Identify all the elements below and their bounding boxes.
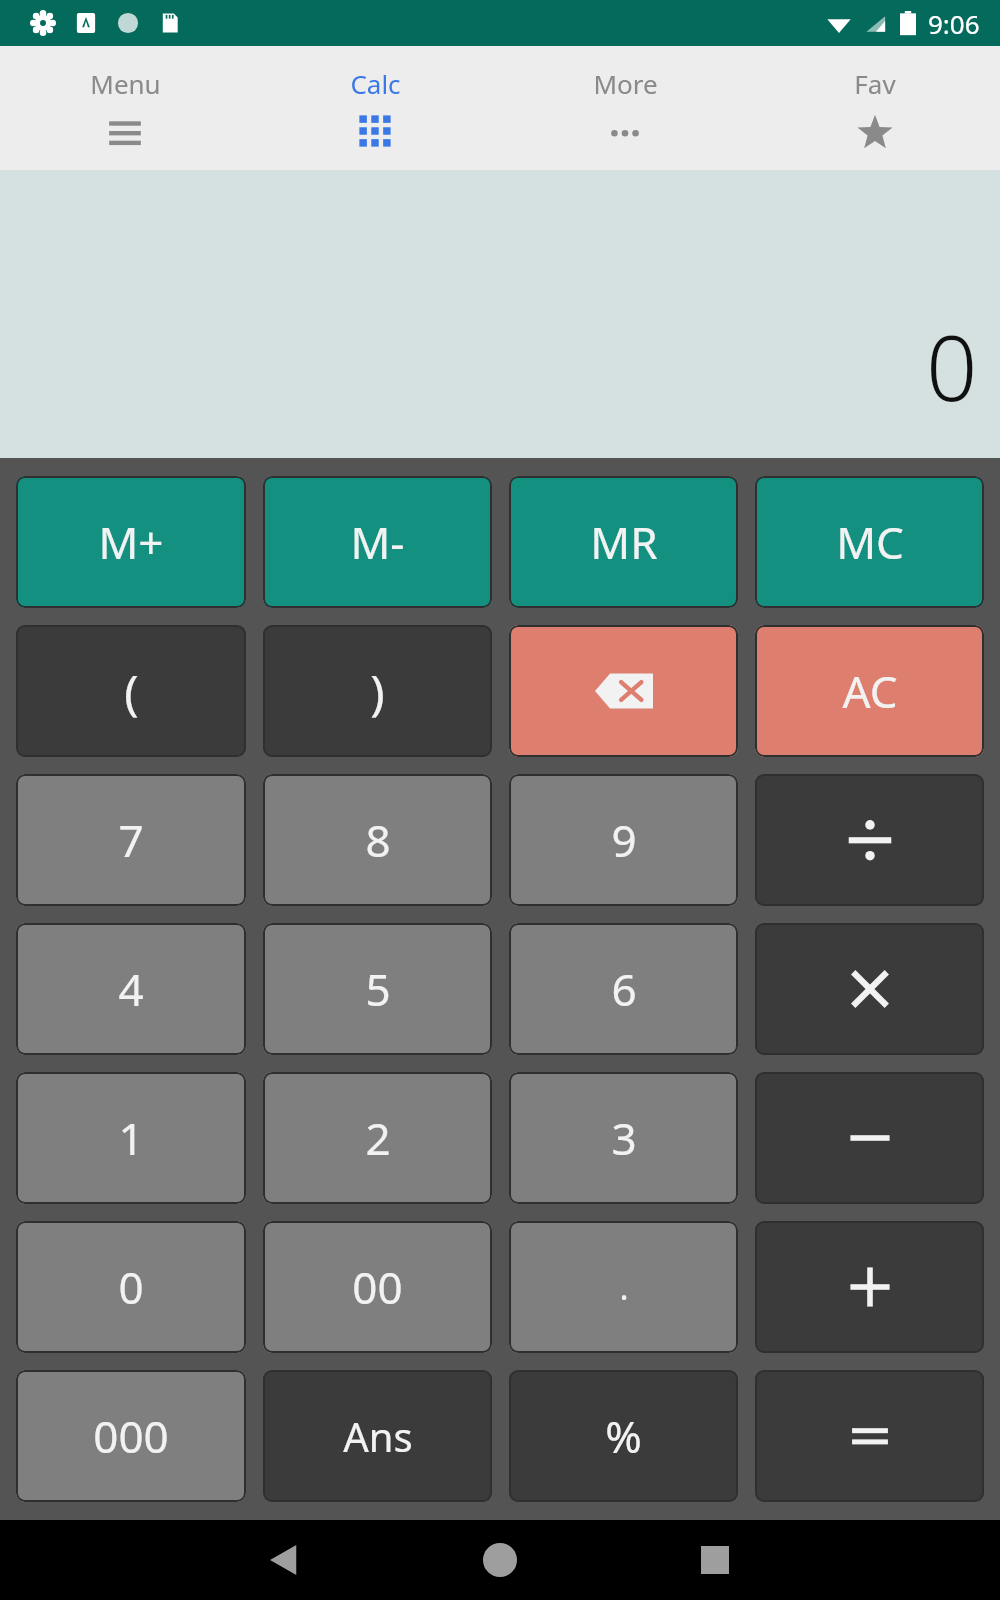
button[interactable]: M-: [263, 476, 492, 608]
button[interactable]: Minus: [755, 1072, 984, 1204]
staticText: 6: [611, 959, 637, 1019]
button[interactable]: 000: [16, 1370, 246, 1502]
staticText: ): [370, 659, 385, 724]
button[interactable]: Menu: [0, 46, 250, 170]
staticText: More: [593, 66, 658, 101]
staticText: Calc: [350, 66, 401, 101]
button[interactable]: Divide: [755, 774, 984, 906]
staticText: Ans: [343, 1409, 413, 1463]
staticText: 9:06: [928, 6, 980, 41]
button[interactable]: Ans: [263, 1370, 492, 1502]
button[interactable]: MR: [509, 476, 738, 608]
button[interactable]: M+: [16, 476, 246, 608]
button[interactable]: Multiply: [755, 923, 984, 1055]
button[interactable]: ): [263, 625, 492, 757]
staticText: 5: [365, 959, 391, 1019]
button[interactable]: 8: [263, 774, 492, 906]
button[interactable]: 00: [263, 1221, 492, 1353]
button[interactable]: 6: [509, 923, 738, 1055]
staticText: 7: [118, 810, 144, 870]
button[interactable]: MC: [755, 476, 984, 608]
staticText: 00: [352, 1257, 403, 1317]
button[interactable]: (: [16, 625, 246, 757]
staticText: 1: [118, 1108, 144, 1168]
staticText: Fav: [854, 66, 896, 101]
button[interactable]: More: [500, 46, 750, 170]
staticText: 3: [611, 1108, 637, 1168]
button[interactable]: Plus: [755, 1221, 984, 1353]
staticText: .: [619, 1264, 629, 1310]
staticText: 8: [365, 810, 391, 870]
staticText: Menu: [90, 66, 161, 101]
staticText: 0: [118, 1257, 144, 1317]
button[interactable]: Equals: [755, 1370, 984, 1502]
button[interactable]: 9: [509, 774, 738, 906]
button[interactable]: %: [509, 1370, 738, 1502]
button[interactable]: AC: [755, 625, 984, 757]
staticText: 9: [611, 810, 637, 870]
staticText: 0: [926, 305, 978, 428]
button[interactable]: Fav: [750, 46, 1000, 170]
button[interactable]: 4: [16, 923, 246, 1055]
staticText: (: [124, 659, 139, 724]
button[interactable]: .: [509, 1221, 738, 1353]
staticText: AC: [842, 661, 898, 721]
staticText: 000: [93, 1406, 169, 1466]
staticText: M+: [98, 512, 164, 572]
staticText: MC: [836, 512, 904, 572]
staticText: 4: [118, 959, 144, 1019]
button[interactable]: Backspace: [509, 625, 738, 757]
button[interactable]: 1: [16, 1072, 246, 1204]
staticText: %: [605, 1406, 642, 1466]
staticText: M-: [350, 512, 405, 572]
staticText: 2: [365, 1108, 391, 1168]
button[interactable]: Calc: [250, 46, 500, 170]
button[interactable]: 0: [16, 1221, 246, 1353]
button[interactable]: 5: [263, 923, 492, 1055]
button[interactable]: 2: [263, 1072, 492, 1204]
button[interactable]: 3: [509, 1072, 738, 1204]
staticText: MR: [590, 512, 658, 572]
button[interactable]: 7: [16, 774, 246, 906]
